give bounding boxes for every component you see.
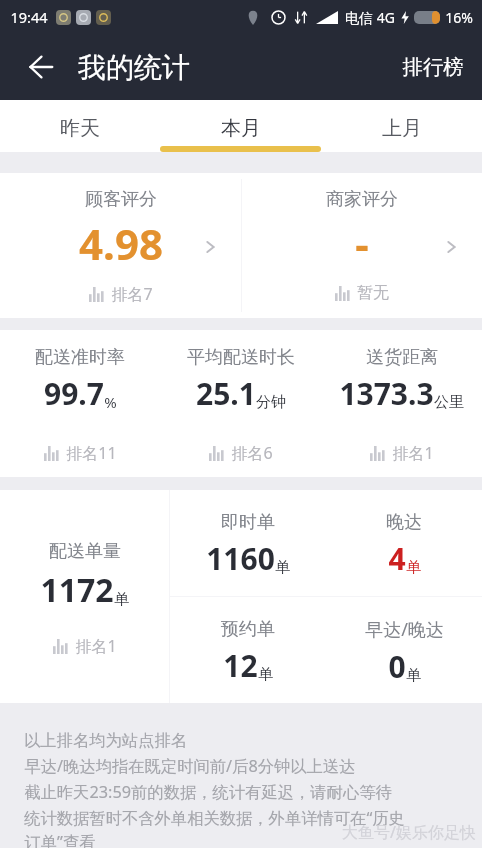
staticText: 昨天: [60, 116, 100, 141]
button[interactable]: 早达/晚达: [326, 597, 482, 703]
staticText: -: [355, 215, 369, 272]
staticText: 25.1: [196, 373, 256, 414]
button[interactable]: 上月: [321, 100, 482, 152]
staticText: 送货距离: [366, 346, 438, 369]
button[interactable]: 配送单量: [0, 490, 169, 703]
staticText: 早达/晚达: [365, 617, 444, 642]
staticText: 19:44: [10, 7, 48, 27]
staticText: 公里: [434, 393, 464, 412]
button[interactable]: 配送准时率: [0, 330, 160, 477]
staticText: 平均配送时长: [187, 346, 295, 369]
staticText: 12: [223, 645, 258, 686]
staticText: 统计数据暂时不含外单相关数据，外单详情可在“历史: [24, 807, 405, 829]
staticText: 排名6: [231, 442, 273, 464]
staticText: 预约单: [221, 618, 275, 641]
button[interactable]: 送货距离: [321, 330, 482, 477]
staticText: 排名1: [392, 442, 434, 464]
staticText: 排名7: [111, 283, 153, 305]
staticText: 排行榜: [402, 54, 464, 80]
staticText: 单: [114, 590, 129, 609]
staticText: 单: [275, 558, 290, 577]
staticText: 1172: [40, 568, 114, 612]
staticText: 我的统计: [78, 50, 190, 85]
staticText: 电信 4G: [345, 8, 395, 27]
staticText: 4: [388, 538, 406, 579]
staticText: 单: [258, 665, 273, 684]
staticText: %: [104, 392, 117, 412]
staticText: 单: [406, 666, 421, 685]
staticText: 顾客评分: [85, 188, 157, 211]
button[interactable]: 商家评分: [241, 173, 482, 318]
staticText: 0: [388, 646, 406, 687]
button[interactable]: Back: [19, 45, 63, 89]
staticText: 1160: [206, 538, 275, 579]
staticText: 配送单量: [49, 540, 121, 563]
staticText: 分钟: [256, 393, 286, 412]
staticText: 单: [406, 558, 421, 577]
staticText: 99.7: [44, 373, 104, 414]
button[interactable]: 排行榜: [384, 44, 482, 90]
staticText: 早达/晚达均指在既定时间前/后8分钟以上送达: [24, 755, 356, 777]
staticText: 4.98: [79, 215, 163, 272]
staticText: 本月: [221, 116, 261, 141]
button[interactable]: 预约单: [170, 597, 326, 703]
button[interactable]: 昨天: [0, 100, 160, 152]
staticText: 商家评分: [326, 188, 398, 211]
staticText: 1373.3: [339, 373, 434, 414]
staticText: 暂无: [357, 283, 389, 303]
button[interactable]: 晚达: [326, 490, 482, 596]
staticText: 16%: [445, 8, 473, 27]
staticText: 截止昨天23:59前的数据，统计有延迟，请耐心等待: [24, 781, 392, 803]
staticText: 排名11: [66, 442, 117, 464]
staticText: 订单”查看: [24, 831, 96, 848]
staticText: 晚达: [386, 511, 422, 534]
button[interactable]: 即时单: [170, 490, 326, 596]
button[interactable]: 顾客评分: [0, 173, 241, 318]
staticText: 上月: [382, 116, 422, 141]
staticText: 大鱼号/娱乐你足快: [342, 821, 476, 843]
staticText: 排名1: [75, 635, 117, 657]
button[interactable]: 平均配送时长: [160, 330, 321, 477]
staticText: 配送准时率: [35, 346, 125, 369]
staticText: 即时单: [221, 511, 275, 534]
button[interactable]: 本月: [160, 100, 321, 152]
staticText: 以上排名均为站点排名: [24, 730, 187, 751]
